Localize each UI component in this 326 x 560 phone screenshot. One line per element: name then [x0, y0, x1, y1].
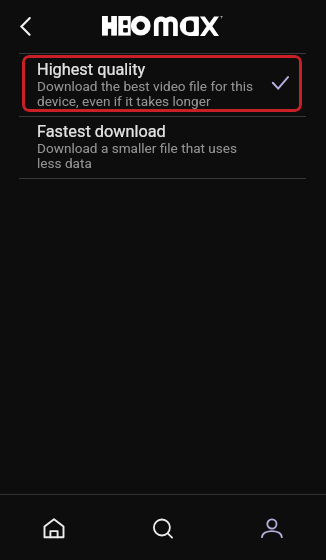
staticText: Highest quality [37, 60, 146, 79]
staticText: Fastest download [37, 122, 166, 141]
button[interactable]: Profile [217, 495, 326, 560]
button[interactable]: Highest quality [22, 55, 302, 112]
button[interactable]: Fastest download [22, 117, 302, 177]
staticText: Download the best video file for this de… [37, 78, 259, 110]
button[interactable]: Home [0, 495, 108, 560]
other: HBO Max [102, 16, 223, 36]
button[interactable]: Search [108, 495, 217, 560]
staticText: Download a smaller file that uses less d… [37, 140, 259, 172]
button[interactable]: Back [8, 8, 44, 45]
